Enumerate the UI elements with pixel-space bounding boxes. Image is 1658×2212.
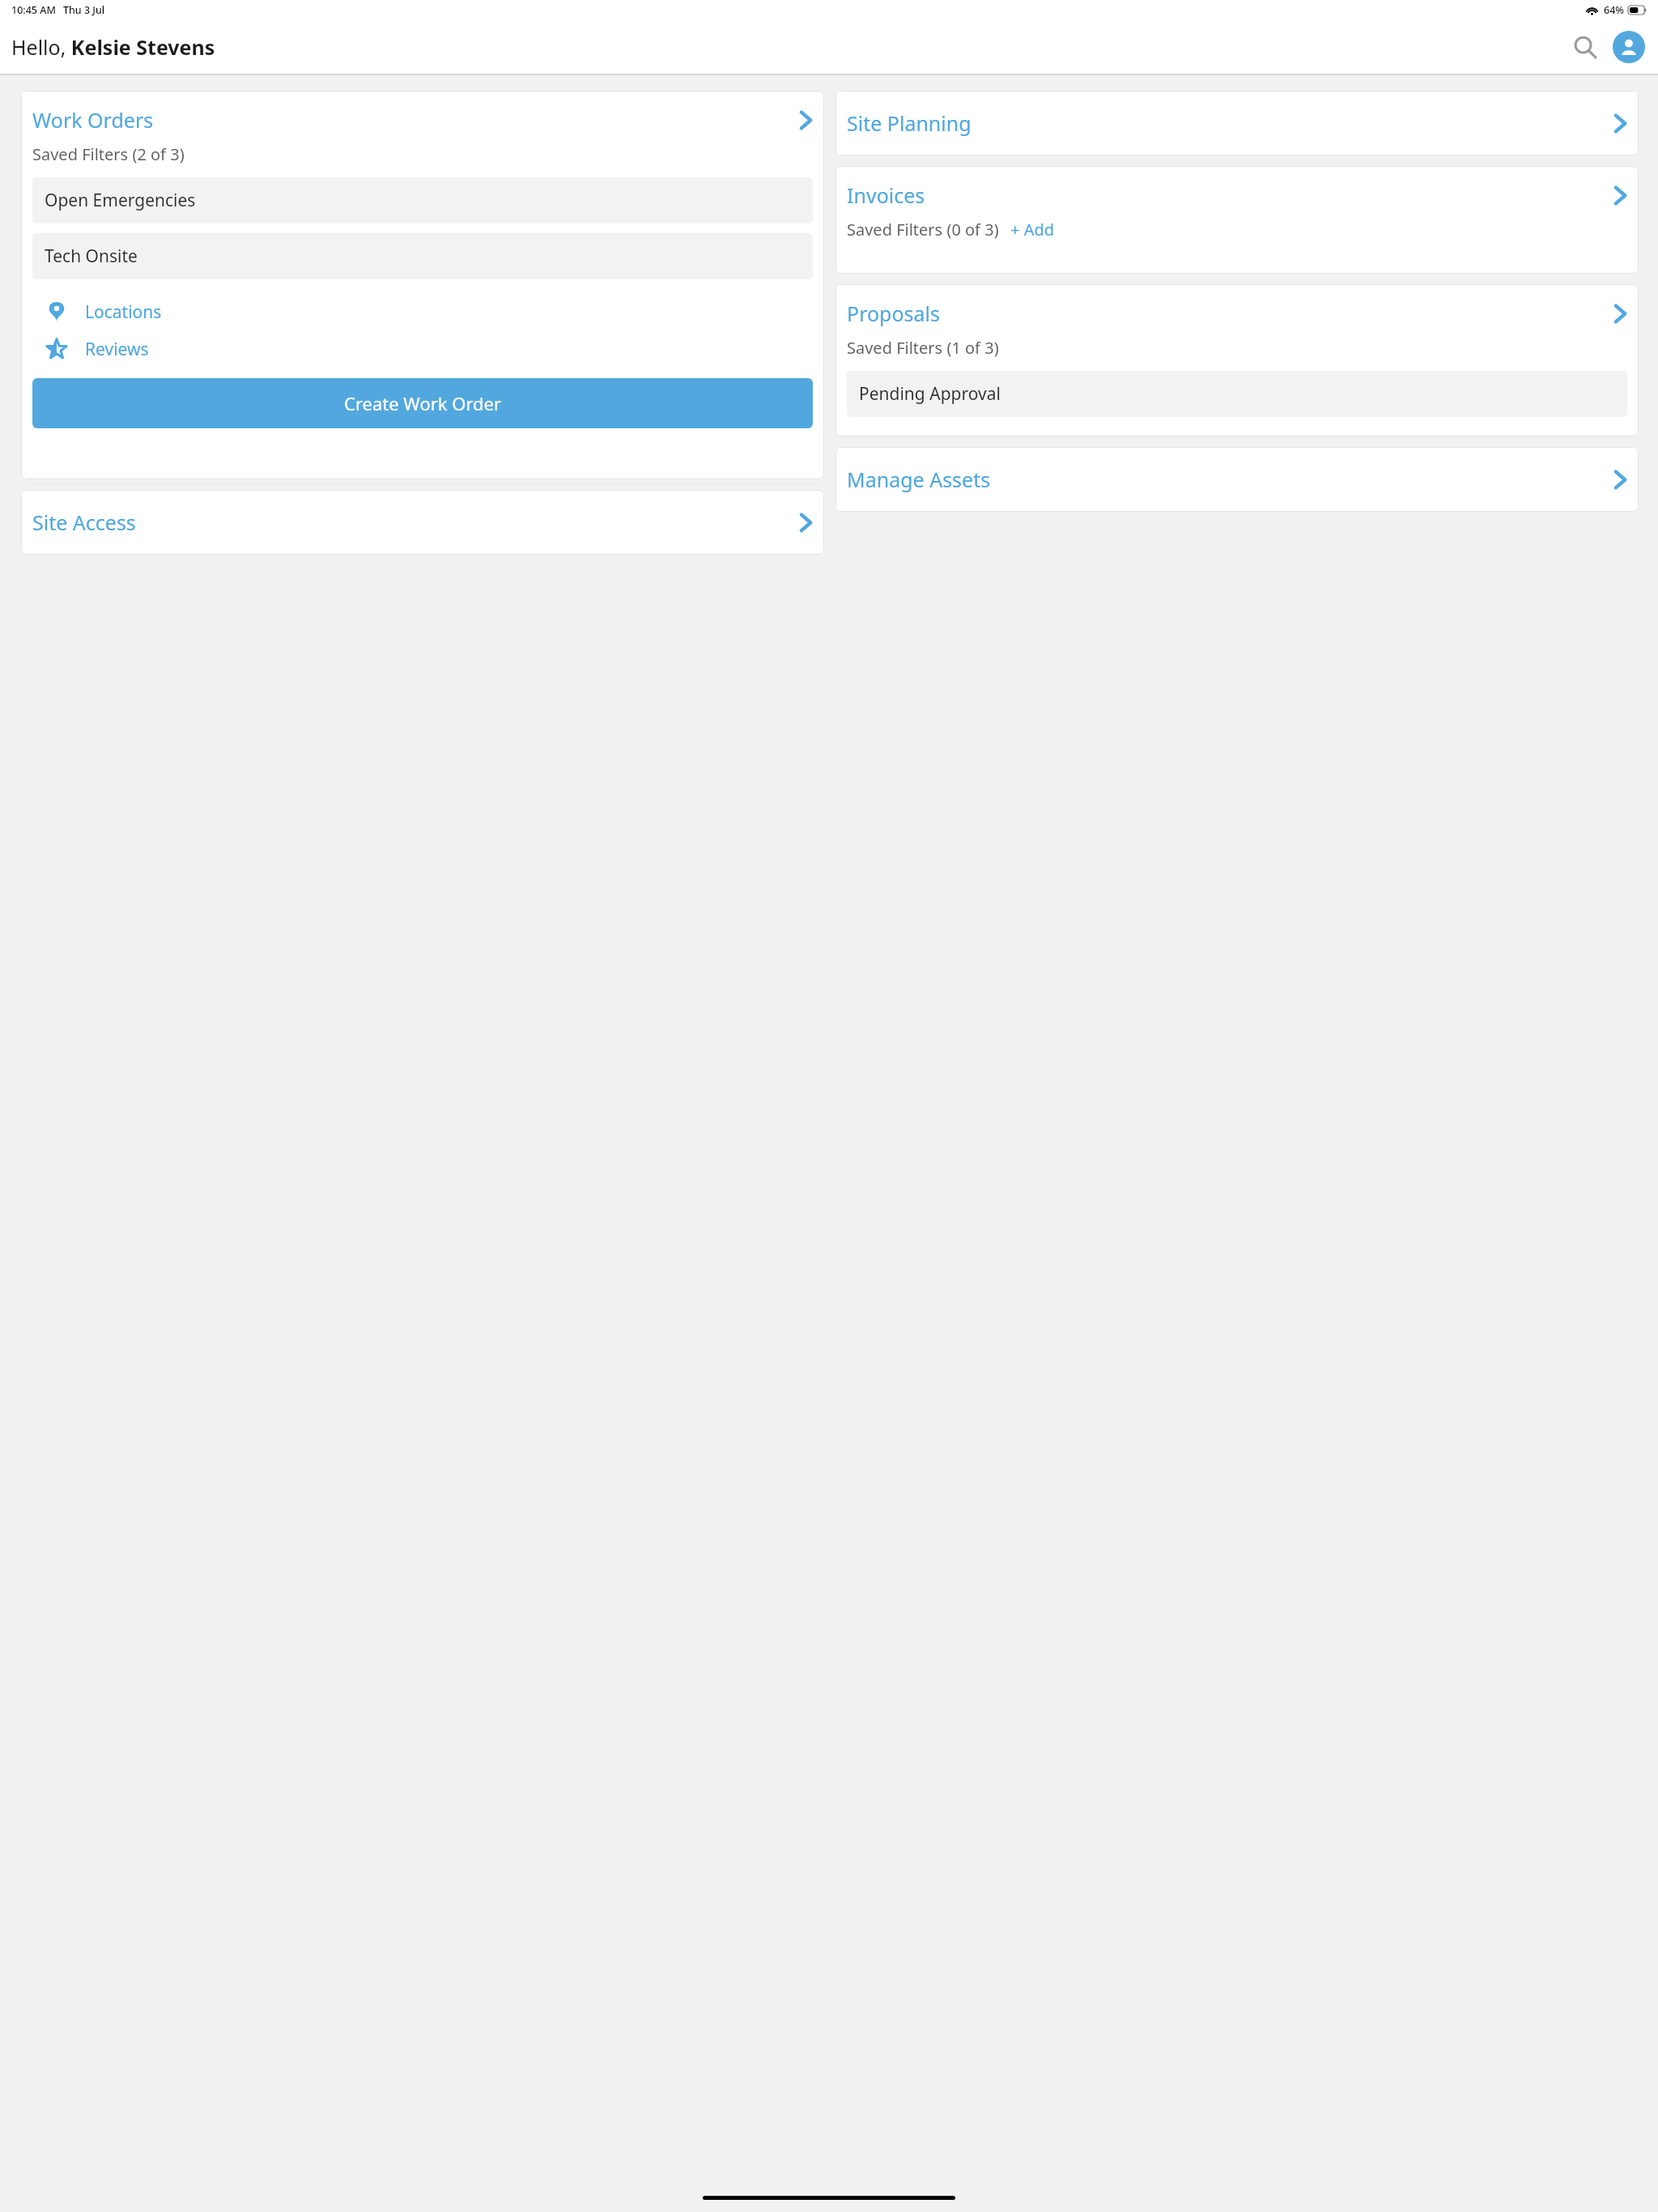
staticText: Create Work Order — [344, 391, 502, 415]
button[interactable]: + Add — [1010, 219, 1055, 240]
button[interactable]: Hello, Kelsie Stevens — [11, 33, 215, 61]
button[interactable]: Manage Assets — [835, 461, 1639, 498]
button[interactable]: Pending Approval — [847, 371, 1627, 417]
button[interactable]: Profile — [1613, 31, 1645, 63]
button[interactable]: Work Orders — [21, 101, 824, 138]
button[interactable]: Tech Onsite — [32, 233, 813, 279]
staticText: Invoices — [847, 181, 925, 209]
button[interactable]: Invoices — [835, 177, 1639, 214]
button[interactable]: Site Access — [21, 504, 824, 541]
button[interactable]: Reviews — [32, 334, 813, 364]
staticText: + Add — [1010, 219, 1055, 240]
staticText: Saved Filters (2 of 3) — [32, 143, 185, 165]
staticText: Work Orders — [32, 106, 154, 134]
staticText: Pending Approval — [859, 382, 1001, 406]
button[interactable]: Site Planning — [835, 104, 1639, 142]
staticText: Saved Filters (1 of 3) — [847, 337, 999, 359]
staticText: Thu 3 Jul — [63, 3, 105, 17]
staticText: Saved Filters (0 of 3) — [847, 219, 999, 240]
staticText: Reviews — [85, 338, 149, 361]
button[interactable]: Search — [1566, 28, 1605, 66]
staticText: Locations — [85, 300, 162, 324]
staticText: 64% — [1604, 3, 1624, 17]
button[interactable]: Proposals — [835, 295, 1639, 332]
button[interactable]: Create Work Order — [32, 378, 813, 428]
staticText: 10:45 AM — [11, 3, 56, 17]
staticText: Tech Onsite — [45, 245, 138, 268]
staticText: Hello, Kelsie Stevens — [11, 33, 215, 61]
button[interactable]: Locations — [32, 297, 813, 326]
button[interactable]: Open Emergencies — [32, 177, 813, 223]
staticText: Proposals — [847, 300, 941, 327]
staticText: Open Emergencies — [45, 189, 196, 212]
staticText: Manage Assets — [847, 466, 991, 493]
staticText: Site Planning — [847, 109, 971, 137]
staticText: Site Access — [32, 508, 136, 536]
